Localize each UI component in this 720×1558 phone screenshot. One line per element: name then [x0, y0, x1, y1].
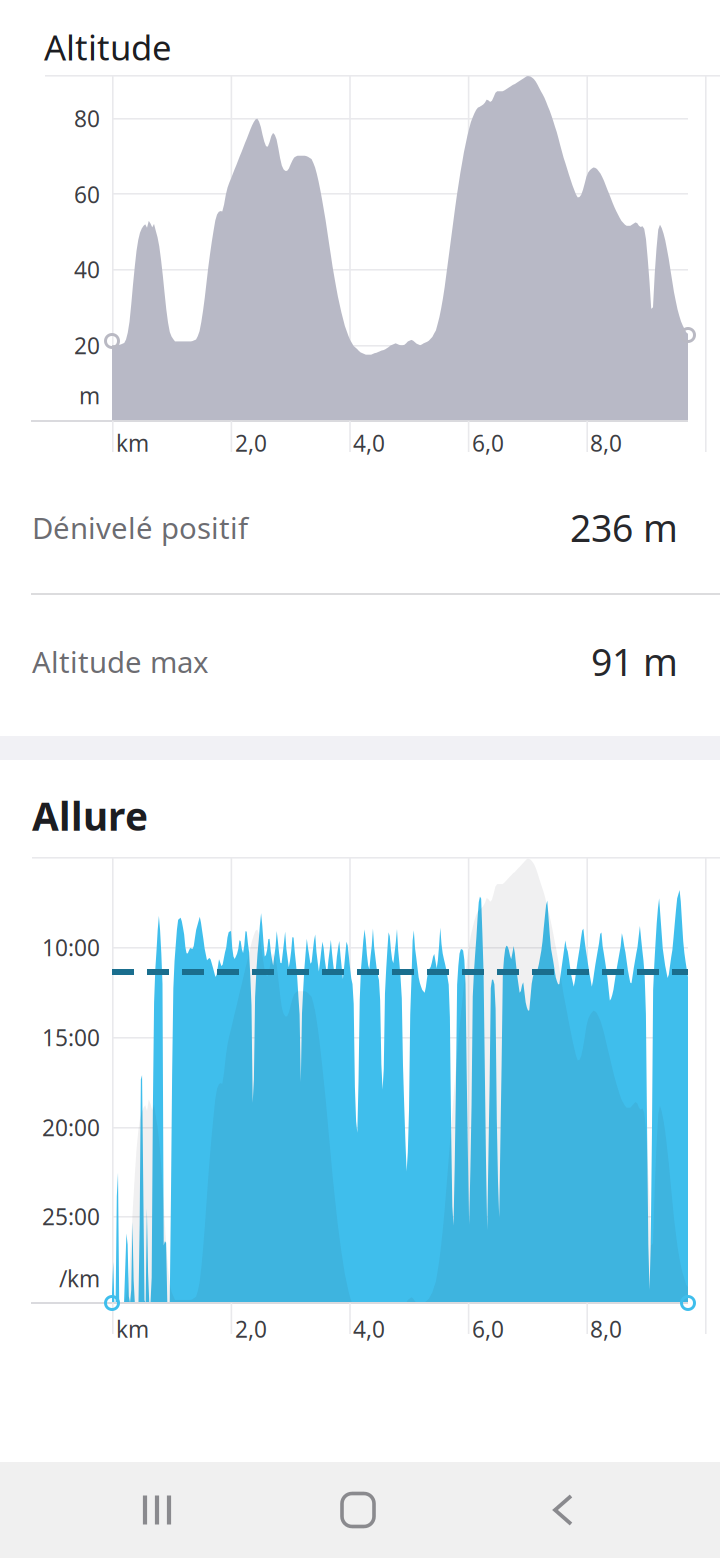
staticText: 40 [74, 254, 100, 284]
staticText: 20:00 [42, 1112, 100, 1142]
staticText: 4,0 [353, 1314, 385, 1344]
button[interactable]: Altitude max [0, 595, 720, 728]
staticText: 60 [74, 179, 100, 209]
staticText: 20 [74, 330, 100, 360]
staticText: Dénivelé positif [32, 508, 248, 547]
button[interactable]: Home [262, 1462, 454, 1558]
staticText: 10:00 [42, 932, 100, 962]
staticText: km [116, 428, 149, 458]
staticText: 15:00 [42, 1022, 100, 1052]
staticText: 6,0 [472, 428, 504, 458]
staticText: 8,0 [590, 428, 622, 458]
staticText: km [116, 1314, 149, 1344]
staticText: /km [59, 1263, 100, 1293]
staticText: 6,0 [472, 1314, 504, 1344]
staticText: Altitude [44, 24, 172, 70]
staticText: 8,0 [590, 1314, 622, 1344]
staticText: 4,0 [353, 428, 385, 458]
button[interactable]: Recents [61, 1462, 253, 1558]
staticText: 25:00 [42, 1201, 100, 1231]
staticText: Allure [32, 790, 148, 841]
staticText: m [79, 380, 100, 410]
button[interactable]: Dénivelé positif [0, 461, 720, 594]
staticText: 80 [74, 103, 100, 133]
staticText: 2,0 [235, 1314, 267, 1344]
staticText: Altitude max [32, 642, 209, 681]
staticText: 2,0 [235, 428, 267, 458]
staticText: 91 m [591, 637, 678, 686]
button[interactable]: Back [463, 1462, 655, 1558]
staticText: 236 m [570, 503, 678, 552]
